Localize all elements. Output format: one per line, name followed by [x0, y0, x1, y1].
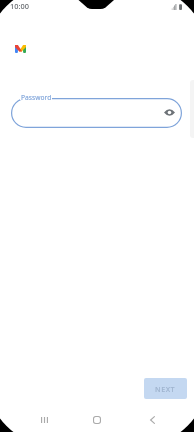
button[interactable]: Back — [138, 408, 166, 432]
button[interactable]: Show password — [160, 103, 179, 122]
button[interactable]: Recent apps — [30, 408, 58, 432]
button[interactable]: NEXT — [144, 378, 187, 399]
staticText: NEXT — [155, 384, 176, 394]
button[interactable]: Home — [83, 408, 111, 432]
staticText: Password — [21, 93, 52, 102]
staticText: 10:00 — [10, 1, 29, 11]
